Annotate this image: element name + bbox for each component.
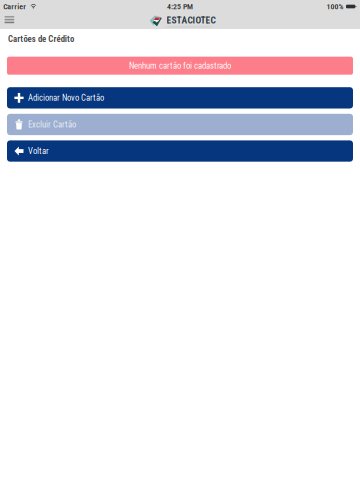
staticText: Voltar: [28, 146, 49, 156]
button[interactable]: Menu: [0, 13, 21, 29]
staticText: 100%: [326, 2, 343, 11]
staticText: Nenhum cartão foi cadastrado: [129, 61, 231, 71]
button[interactable]: Excluir Cartão: [7, 114, 353, 135]
staticText: ESTACIOTEC: [167, 15, 216, 26]
staticText: Cartões de Crédito: [8, 34, 74, 44]
button[interactable]: Adicionar Novo Cartão: [7, 87, 353, 108]
button[interactable]: Voltar: [7, 140, 353, 162]
staticText: Adicionar Novo Cartão: [28, 93, 104, 103]
staticText: Excluir Cartão: [28, 119, 76, 130]
staticText: 4:25 PM: [167, 2, 193, 11]
staticText: Carrier: [3, 2, 26, 11]
